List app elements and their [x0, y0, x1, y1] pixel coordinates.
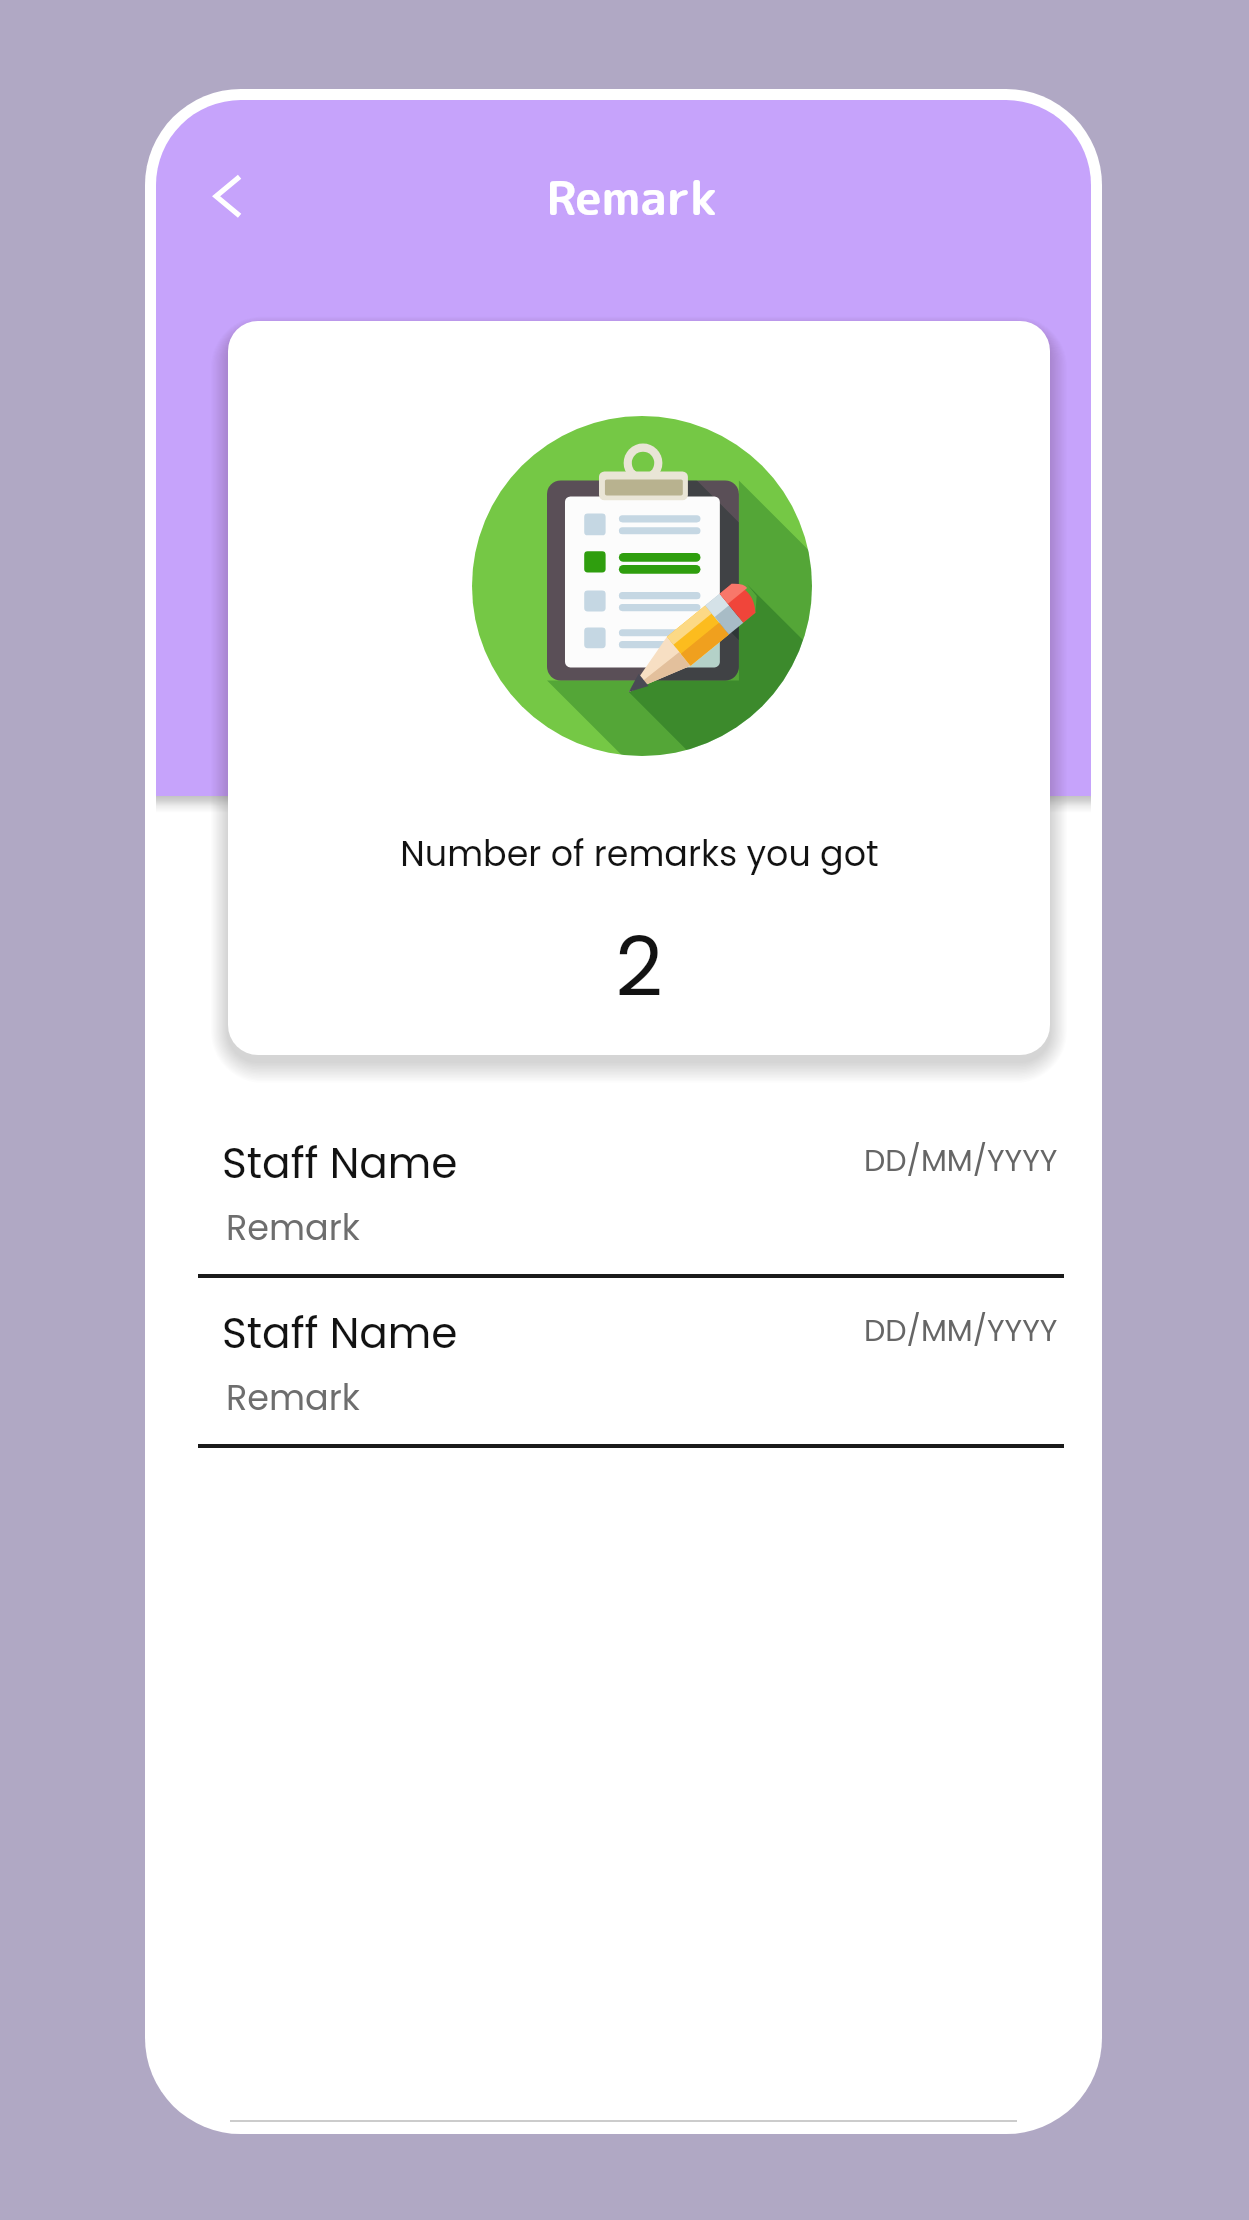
- staticText: 2: [615, 909, 663, 1025]
- staticText: Remark: [226, 1203, 360, 1252]
- button[interactable]: Number of remarks you got: [228, 321, 1050, 1055]
- button[interactable]: Staff Name: [198, 1116, 1064, 1280]
- button[interactable]: Back: [196, 160, 268, 232]
- button[interactable]: Staff Name: [198, 1286, 1064, 1450]
- staticText: Remark: [226, 1373, 360, 1422]
- staticText: Number of remarks you got: [400, 829, 879, 878]
- staticText: DD/MM/YYYY: [864, 1309, 1058, 1351]
- staticText: DD/MM/YYYY: [864, 1139, 1058, 1181]
- staticText: Staff Name: [222, 1304, 458, 1363]
- staticText: Staff Name: [222, 1134, 458, 1193]
- staticText: Remark: [546, 164, 717, 230]
